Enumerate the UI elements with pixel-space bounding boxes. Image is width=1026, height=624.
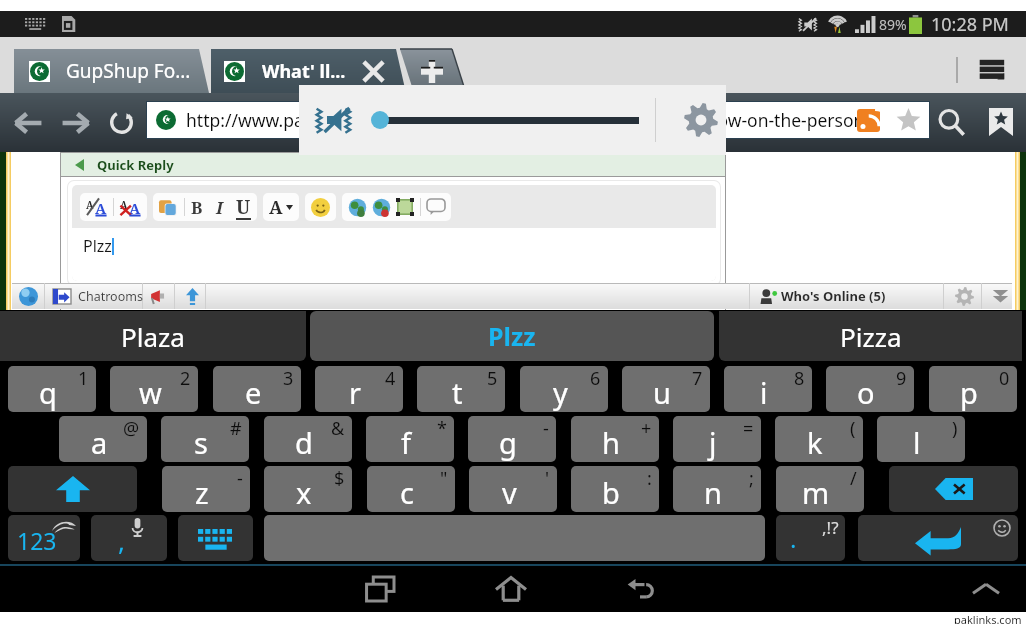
- staticText: k: [807, 423, 823, 462]
- button[interactable]: q: [8, 366, 96, 412]
- staticText: t: [452, 373, 463, 412]
- button[interactable]: o: [826, 366, 914, 412]
- button[interactable]: .: [776, 515, 845, 561]
- staticText: Pizza: [840, 319, 902, 354]
- staticText: e: [245, 373, 262, 412]
- button[interactable]: Back: [617, 566, 663, 612]
- staticText: z: [195, 473, 209, 512]
- button[interactable]: Reload: [100, 101, 142, 143]
- button[interactable]: Sound settings: [680, 99, 722, 141]
- button[interactable]: ,: [91, 515, 167, 561]
- button[interactable]: m: [776, 466, 864, 512]
- staticText: ;: [749, 466, 754, 491]
- staticText: What' ll...: [262, 59, 346, 84]
- button[interactable]: y: [520, 366, 608, 412]
- button[interactable]: http://www.paklinks.com/gupshup/what-ll-…: [147, 102, 929, 138]
- staticText: I: [216, 196, 223, 219]
- staticText: 2: [180, 366, 191, 391]
- staticText: l: [913, 423, 921, 462]
- staticText: d: [295, 423, 313, 462]
- staticText: u: [653, 373, 671, 412]
- button[interactable]: j: [673, 416, 761, 462]
- staticText: j: [709, 423, 717, 462]
- button[interactable]: e: [213, 366, 301, 412]
- staticText: ,!?: [822, 516, 839, 539]
- staticText: 3: [283, 366, 294, 391]
- button[interactable]: What' ll...: [211, 49, 406, 93]
- button[interactable]: [889, 466, 1018, 512]
- button[interactable]: l: [877, 416, 965, 462]
- button[interactable]: h: [571, 416, 659, 462]
- staticText: ,: [118, 523, 125, 558]
- staticText: 1: [78, 366, 89, 391]
- button[interactable]: Home: [488, 566, 534, 612]
- staticText: 9: [896, 366, 907, 391]
- staticText: 4: [385, 366, 396, 391]
- button[interactable]: a: [59, 416, 147, 462]
- button[interactable]: Plaza: [0, 311, 306, 361]
- staticText: 0: [999, 366, 1010, 391]
- staticText: g: [499, 423, 517, 462]
- button[interactable]: b: [571, 466, 659, 512]
- button[interactable]: v: [469, 466, 557, 512]
- button[interactable]: Search: [930, 101, 974, 145]
- staticText: r: [349, 373, 361, 412]
- button[interactable]: Switch keyboard: [178, 515, 253, 561]
- button[interactable]: Menu: [978, 53, 1012, 87]
- button[interactable]: Plzz: [310, 311, 714, 361]
- staticText: (: [850, 416, 856, 441]
- staticText: Plzz: [83, 235, 112, 257]
- button[interactable]: t: [417, 366, 505, 412]
- staticText: f: [401, 423, 411, 462]
- staticText: i: [760, 373, 768, 412]
- staticText: A: [129, 198, 141, 216]
- staticText: q: [39, 373, 57, 412]
- button[interactable]: [8, 466, 137, 512]
- other: Close tab: [362, 60, 385, 83]
- staticText: paklinks.com: [954, 612, 1022, 624]
- button[interactable]: GupShup Fo...: [14, 49, 208, 93]
- button[interactable]: 123: [8, 515, 80, 561]
- staticText: http://www.paklinks.com/gupshup/what-ll-…: [186, 108, 871, 132]
- staticText: Plaza: [121, 319, 185, 354]
- staticText: 7: [692, 366, 703, 391]
- button[interactable]: u: [622, 366, 710, 412]
- staticText: h: [602, 423, 620, 462]
- staticText: ): [952, 416, 958, 441]
- staticText: -: [237, 466, 243, 491]
- button[interactable]: Enter: [858, 515, 1018, 561]
- button[interactable]: Pizza: [719, 311, 1022, 361]
- button[interactable]: f: [366, 416, 454, 462]
- staticText: Plzz: [488, 319, 536, 353]
- button[interactable]: d: [264, 416, 352, 462]
- staticText: #: [230, 416, 242, 441]
- button[interactable]: Forward: [54, 101, 98, 145]
- button[interactable]: Space: [264, 515, 765, 561]
- button[interactable]: Recents: [357, 566, 403, 612]
- staticText: 8: [794, 366, 805, 391]
- button[interactable]: k: [775, 416, 863, 462]
- staticText: *: [437, 416, 447, 441]
- button[interactable]: n: [673, 466, 761, 512]
- button[interactable]: x: [264, 466, 352, 512]
- button[interactable]: w: [110, 366, 198, 412]
- button[interactable]: p: [929, 366, 1017, 412]
- staticText: 6: [590, 366, 601, 391]
- button[interactable]: g: [468, 416, 556, 462]
- button[interactable]: i: [724, 366, 812, 412]
- staticText: ": [440, 466, 448, 491]
- staticText: U: [236, 194, 251, 220]
- button[interactable]: s: [161, 416, 249, 462]
- button[interactable]: New tab: [392, 49, 466, 93]
- button[interactable]: z: [162, 466, 250, 512]
- staticText: $: [334, 466, 345, 491]
- staticText: m: [802, 473, 830, 512]
- button[interactable]: Expand: [966, 569, 1006, 609]
- staticText: Who's Online (5): [781, 287, 886, 305]
- staticText: 89%: [879, 15, 907, 34]
- button[interactable]: c: [367, 466, 455, 512]
- staticText: GupShup Fo...: [66, 58, 191, 84]
- button[interactable]: Back: [6, 101, 50, 145]
- button[interactable]: Bookmarks: [980, 101, 1022, 143]
- button[interactable]: r: [315, 366, 403, 412]
